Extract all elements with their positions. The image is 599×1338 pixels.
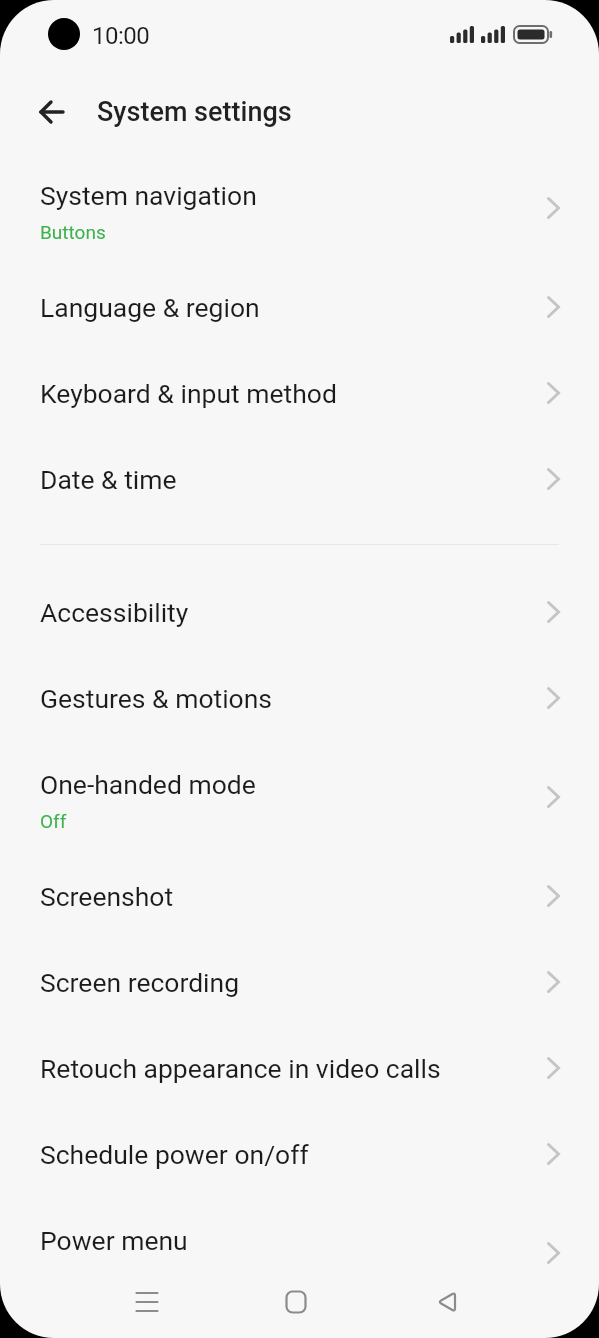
staticText: Screen recording (40, 967, 240, 998)
button[interactable]: Retouch appearance in video calls (0, 1025, 599, 1111)
button[interactable]: Power menu (0, 1197, 599, 1309)
staticText: System navigation (40, 180, 257, 211)
staticText: Gestures & motions (40, 683, 273, 714)
staticText: Keyboard & input method (40, 378, 337, 409)
staticText: System settings (97, 96, 292, 128)
staticText: Power menu (40, 1225, 188, 1256)
button[interactable] (123, 1278, 171, 1326)
button[interactable] (272, 1278, 320, 1326)
staticText: Retouch appearance in video calls (40, 1053, 441, 1084)
button[interactable]: Language & region (0, 264, 599, 350)
staticText: Off (40, 810, 67, 832)
staticText: 10:00 (92, 22, 150, 50)
button[interactable]: Screenshot (0, 853, 599, 939)
button[interactable]: One-handed mode (0, 741, 599, 853)
button[interactable] (28, 88, 76, 136)
staticText: Language & region (40, 292, 260, 323)
staticText: Buttons (40, 221, 106, 243)
staticText: Accessibility (40, 597, 189, 628)
staticText: One-handed mode (40, 769, 256, 800)
staticText: Date & time (40, 464, 177, 495)
button[interactable]: Screen recording (0, 939, 599, 1025)
button[interactable]: Accessibility (0, 569, 599, 655)
staticText: Schedule power on/off (40, 1139, 309, 1170)
button[interactable] (423, 1278, 471, 1326)
button[interactable]: Schedule power on/off (0, 1111, 599, 1197)
button[interactable]: System navigation (0, 152, 599, 264)
button[interactable]: Gestures & motions (0, 655, 599, 741)
button[interactable]: Date & time (0, 436, 599, 522)
button[interactable]: Keyboard & input method (0, 350, 599, 436)
staticText: Screenshot (40, 881, 174, 912)
